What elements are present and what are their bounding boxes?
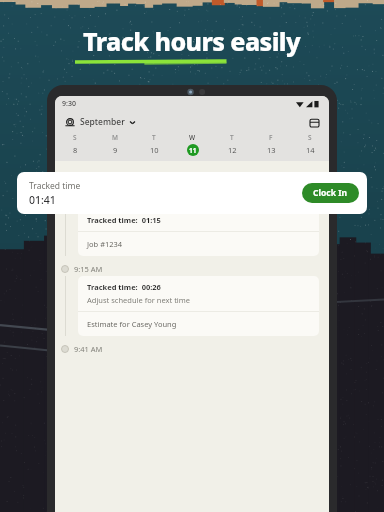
- staticText: 10: [150, 145, 159, 155]
- staticText: 9:41 AM: [74, 344, 103, 354]
- staticText: 11: [189, 146, 197, 155]
- staticText: 9:15 AM: [74, 264, 103, 274]
- staticText: 13: [267, 145, 276, 155]
- staticText: 14: [306, 145, 315, 155]
- button[interactable]: S: [55, 133, 95, 156]
- button[interactable]: Calendar: [307, 115, 321, 129]
- staticText: F: [269, 133, 273, 142]
- button[interactable]: Tracked time: 00:26: [78, 276, 319, 336]
- staticText: Estimate for Casey Young: [87, 319, 177, 329]
- button[interactable]: T: [134, 133, 173, 156]
- button[interactable]: Tracked time: 01:15: [78, 209, 319, 256]
- staticText: 8: [73, 145, 78, 155]
- staticText: Track hours easily: [83, 24, 301, 58]
- staticText: Tracked time: [29, 180, 81, 192]
- staticText: Adjust schedule for next time: [87, 295, 191, 305]
- staticText: 12: [228, 145, 237, 155]
- staticText: Clock In: [313, 187, 348, 199]
- button[interactable]: S: [290, 133, 329, 156]
- staticText: T: [230, 133, 234, 142]
- staticText: Tracked time: 01:15: [87, 215, 161, 225]
- staticText: S: [73, 133, 77, 142]
- staticText: S: [308, 133, 312, 142]
- staticText: Tracked time: 00:26: [87, 282, 161, 292]
- staticText: 9:30: [62, 99, 76, 109]
- staticText: Job #1234: [87, 239, 123, 249]
- staticText: 01:41: [29, 193, 56, 207]
- button[interactable]: Clock In: [302, 183, 359, 203]
- staticText: 9: [113, 145, 118, 155]
- staticText: September: [80, 116, 125, 128]
- button[interactable]: T: [212, 133, 251, 156]
- button[interactable]: September: [63, 114, 138, 130]
- button[interactable]: W: [173, 133, 212, 156]
- button[interactable]: M: [95, 133, 134, 156]
- button[interactable]: F: [251, 133, 290, 156]
- staticText: W: [189, 133, 196, 142]
- staticText: M: [112, 133, 118, 142]
- staticText: T: [152, 133, 156, 142]
